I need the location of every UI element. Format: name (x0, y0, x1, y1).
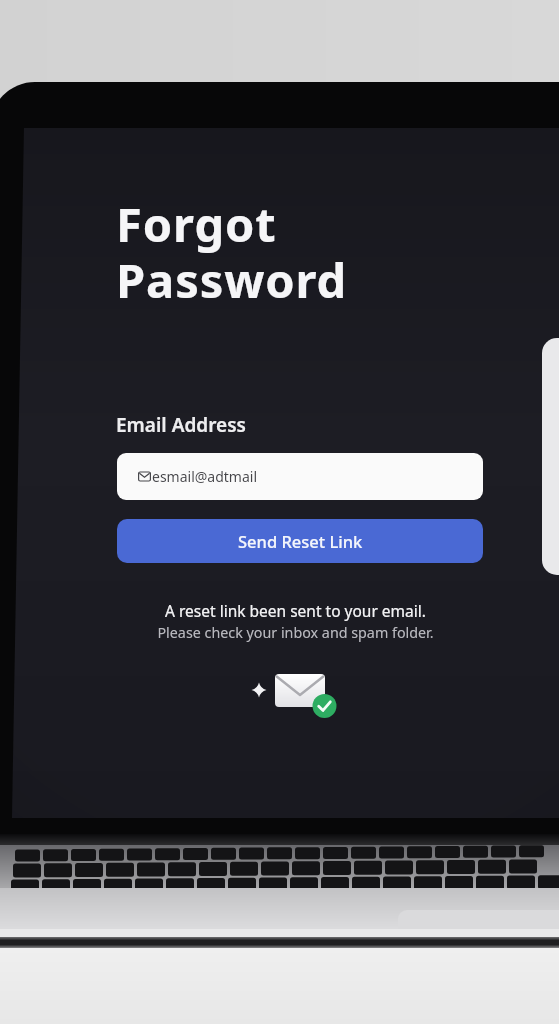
button[interactable]: esmail@adtmail (117, 453, 483, 500)
staticText: A reset link been sent to your email. (165, 600, 426, 621)
staticText: Send Reset Link (238, 530, 363, 552)
staticText: esmail@adtmail (152, 467, 258, 486)
staticText: Forgot Password (116, 192, 348, 312)
button[interactable]: Send Reset Link (117, 519, 483, 563)
staticText: Please check your inbox and spam folder. (157, 623, 434, 642)
staticText: Email Address (116, 412, 246, 438)
